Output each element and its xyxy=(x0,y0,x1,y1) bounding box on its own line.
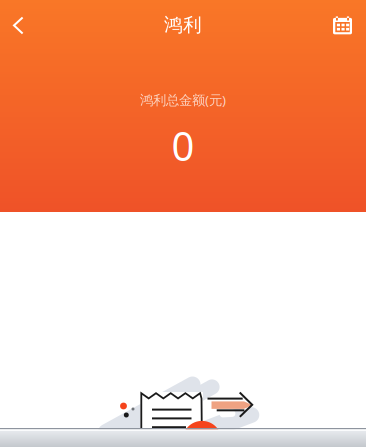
button[interactable]: Back xyxy=(8,14,52,58)
staticText: 鸿利 xyxy=(164,13,202,36)
staticText: 0 xyxy=(171,119,194,172)
button[interactable]: Calendar xyxy=(333,16,366,60)
staticText: 鸿利总金额(元) xyxy=(140,91,226,109)
